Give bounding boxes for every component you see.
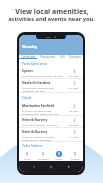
button[interactable]: Parks/Open areas [19,61,83,67]
staticText: Heinrik Nursery [22,118,48,122]
button[interactable]: Community [19,55,37,59]
staticText: My search [38,158,49,161]
button[interactable]: Home [48,164,54,170]
staticText: Playing area [40,55,55,59]
staticText: 0.3 miles [69,75,79,78]
staticText: Vincent Lane Woodland Way, Southgate, AB… [22,86,55,92]
staticText: View local amenities, [15,7,89,17]
button[interactable]: Sysons [19,67,83,79]
button[interactable]: Heinrik Nursery [19,116,83,128]
staticText: 0.6 miles [69,110,79,113]
staticText: Home [24,158,31,161]
staticText: St Chads 2-4 Wendy Street, Ringwood Way,… [22,109,59,115]
button[interactable]: Recents [66,164,72,170]
staticText: Marchadon Fairfield [22,104,54,108]
staticText: Nearby [22,44,38,50]
staticText: Parks/Open areas [22,62,48,66]
staticText: Pub [60,55,65,59]
staticText: Naxforth Gardens [22,81,51,85]
staticText: activities and events near you. [8,15,95,23]
staticText: Community [21,55,36,59]
button[interactable]: Back [31,164,37,170]
button[interactable]: School [19,93,83,102]
staticText: Whittington Nursery, Stanmore [22,123,58,126]
staticText: Account [71,158,80,161]
button[interactable]: Police Stations [19,142,83,150]
staticText: Police Stations [22,144,43,148]
staticText: Transport [69,55,81,59]
staticText: Shade 38 Newtich St Victoria, Ringwood W… [22,135,55,141]
button[interactable]: Account [67,151,83,161]
button[interactable]: Naxforth Gardens [19,79,83,93]
staticText: School [22,96,32,100]
button[interactable]: Heinrik Nursery [19,128,83,142]
button[interactable]: Nearby [51,151,67,161]
staticText: 0.8 miles [69,124,79,127]
staticText: 30 Woodland Way, London, AB1 2CD [22,74,63,77]
staticText: 1.1 miles [69,136,79,139]
button[interactable]: Pub [57,55,67,59]
button[interactable]: Playing area [37,55,57,59]
staticText: Nearby [55,158,63,161]
button[interactable]: Transport [67,55,83,59]
button[interactable]: Marchadon Fairfield [19,102,83,116]
staticText: Heinrik Nursery [22,130,48,134]
staticText: 0.4 miles [69,87,79,90]
button[interactable]: My search [35,151,51,161]
staticText: Sysons [22,69,33,73]
button[interactable]: Home [19,151,35,161]
